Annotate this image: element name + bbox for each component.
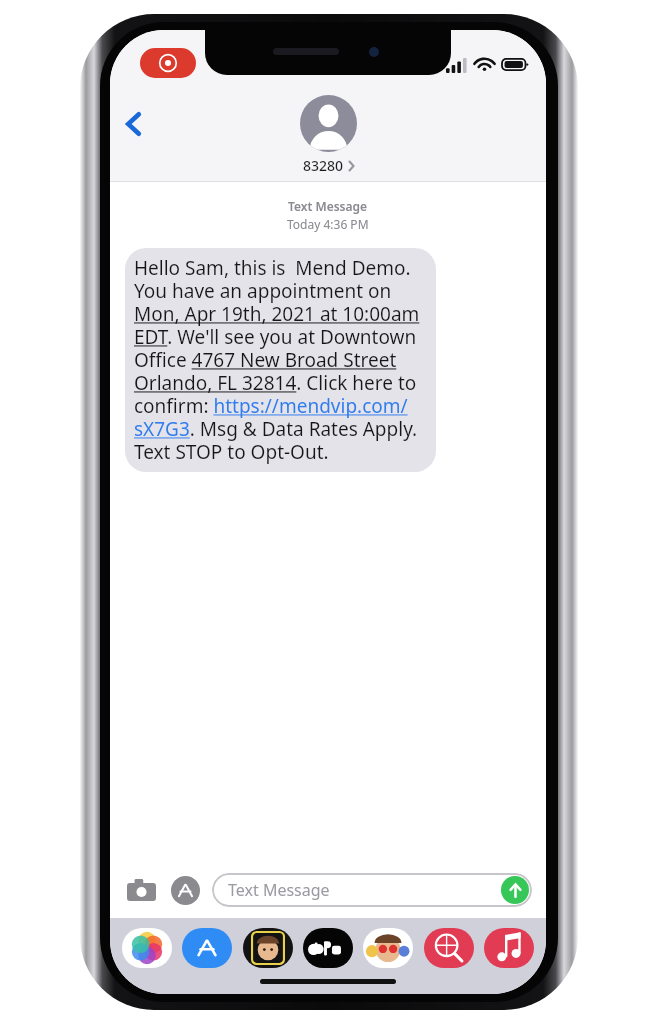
staticText: Text Message	[228, 879, 330, 901]
staticText: 83280	[303, 156, 344, 175]
button[interactable]: Send	[501, 876, 529, 904]
button[interactable]: Memoji	[243, 928, 293, 968]
button[interactable]: Camera	[124, 873, 158, 907]
button[interactable]: Apple Pay	[303, 928, 353, 968]
staticText: Text Message	[288, 198, 368, 214]
staticText: Today 4:36 PM	[287, 216, 369, 232]
button[interactable]: App Store	[168, 873, 202, 907]
button[interactable]: Memoji stickers	[363, 928, 413, 968]
button[interactable]: Music	[484, 928, 534, 968]
button[interactable]: Back	[113, 104, 153, 144]
button[interactable]: Text Message	[212, 873, 532, 907]
staticText: Hello Sam, this is Mend Demo. You have a…	[134, 255, 429, 465]
button[interactable]: App Store	[182, 928, 232, 968]
button[interactable]: Images	[424, 928, 474, 968]
button[interactable]: Hello Sam, this is Mend Demo. You have a…	[125, 248, 436, 472]
button[interactable]: Contact avatar	[300, 95, 357, 152]
button[interactable]: Recording indicator	[140, 48, 196, 78]
button[interactable]: Photos	[122, 928, 172, 968]
